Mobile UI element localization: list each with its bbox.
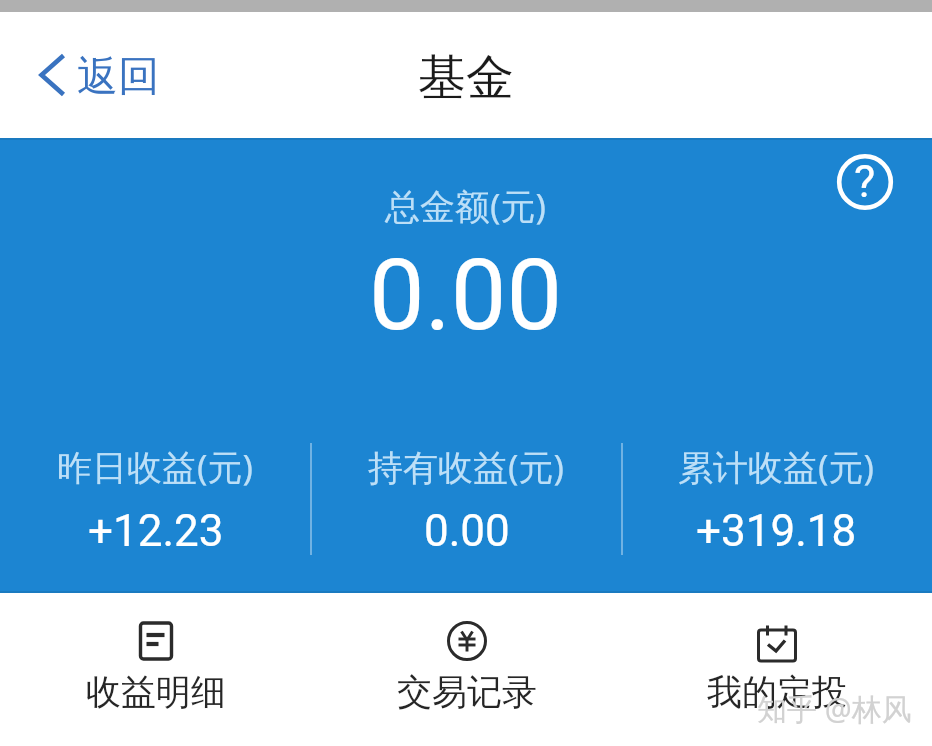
button[interactable]: 昨日收益(元): [0, 443, 311, 557]
staticText: ?: [854, 155, 876, 208]
button[interactable]: Help: [836, 153, 894, 211]
staticText: 0.00: [424, 505, 510, 557]
button[interactable]: 累计收益(元): [621, 443, 932, 557]
staticText: 交易记录: [397, 670, 537, 714]
staticText: 收益明细: [86, 670, 226, 714]
staticText: 0.00: [369, 237, 563, 353]
staticText: 总金额(元): [385, 182, 547, 230]
staticText: 累计收益(元): [678, 443, 875, 491]
staticText: 持有收益(元): [368, 443, 565, 491]
button[interactable]: 收益明细: [0, 593, 311, 746]
staticText: 知乎 @林风: [757, 688, 912, 729]
staticText: 返回: [77, 51, 159, 103]
staticText: 基金: [418, 48, 514, 108]
staticText: +12.23: [88, 505, 224, 557]
button[interactable]: 持有收益(元): [311, 443, 622, 557]
button[interactable]: 交易记录: [311, 593, 622, 746]
staticText: 昨日收益(元): [57, 443, 254, 491]
button[interactable]: 我的定投: [621, 593, 932, 746]
staticText: +319.18: [696, 505, 857, 557]
button[interactable]: 返回: [24, 37, 169, 113]
staticText: 我的定投: [707, 670, 847, 714]
